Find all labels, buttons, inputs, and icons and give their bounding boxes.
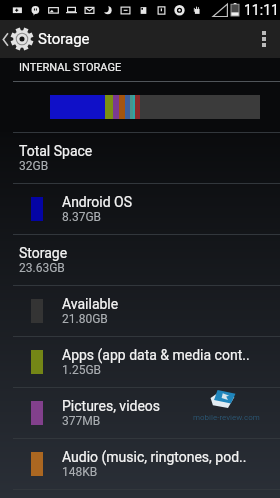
staticText: 21.80GB	[62, 312, 108, 326]
staticText: 32GB	[19, 159, 49, 173]
staticText: 11:11	[244, 2, 279, 18]
button[interactable]: More options	[248, 20, 280, 58]
button[interactable]: Storage	[0, 234, 280, 285]
button[interactable]: Navigate up	[0, 20, 90, 58]
button[interactable]: Apps (app data & media cont..	[0, 336, 280, 387]
button[interactable]: Total Space	[0, 132, 280, 183]
button[interactable]: Audio (music, ringtones, pod..	[0, 438, 280, 489]
staticText: Android OS	[62, 194, 133, 210]
button[interactable]: Pictures, videos	[0, 387, 280, 438]
staticText: Pictures, videos	[62, 398, 161, 414]
staticText: mobile-review.com	[193, 413, 260, 422]
staticText: Total Space	[19, 143, 93, 159]
button[interactable]: Available	[0, 285, 280, 336]
staticText: 23.63GB	[19, 261, 65, 275]
staticText: 377MB	[62, 414, 101, 428]
staticText: Storage	[38, 30, 90, 48]
staticText: INTERNAL STORAGE	[19, 61, 122, 74]
staticText: Storage	[19, 245, 68, 261]
staticText: Available	[62, 296, 119, 312]
button[interactable]: Android OS	[0, 183, 280, 234]
other: Navigate up	[2, 32, 9, 47]
staticText: 148KB	[62, 465, 98, 479]
staticText: Audio (music, ringtones, pod..	[62, 449, 247, 465]
staticText: 1.25GB	[62, 363, 102, 377]
staticText: 8.37GB	[62, 210, 102, 224]
staticText: Apps (app data & media cont..	[62, 347, 250, 363]
